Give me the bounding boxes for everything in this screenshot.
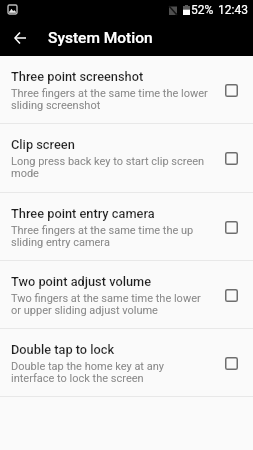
button[interactable]: Three point entry camera — [0, 193, 253, 261]
staticText: Two point adjust volume — [11, 274, 152, 289]
staticText: Three fingers at the same time the up sl… — [11, 225, 209, 249]
button[interactable]: Back — [0, 20, 40, 56]
staticText: Long press back key to start clip screen… — [11, 156, 209, 180]
staticText: Double tap to lock — [11, 342, 115, 357]
staticText: System Motion — [48, 29, 153, 47]
button[interactable]: Three point screenshot — [0, 56, 253, 124]
button[interactable]: Double tap to lock — [0, 329, 253, 397]
staticText: Three point screenshot — [11, 69, 144, 84]
button[interactable]: Two point adjust volume — [0, 261, 253, 329]
staticText: Two fingers at the same time the lower o… — [11, 293, 209, 317]
staticText: 12:43 — [218, 3, 248, 17]
button[interactable]: Clip screen — [0, 124, 253, 193]
staticText: Three point entry camera — [11, 206, 155, 221]
staticText: 52% — [191, 3, 214, 17]
staticText: Clip screen — [11, 137, 75, 152]
staticText: Three fingers at the same time the lower… — [11, 88, 209, 112]
staticText: Double tap the home key at any interface… — [11, 361, 209, 385]
